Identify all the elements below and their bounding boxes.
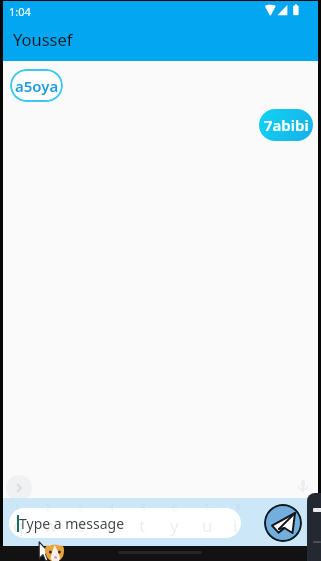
staticText: 1 bbox=[15, 501, 21, 513]
staticText: u bbox=[202, 514, 213, 537]
button[interactable]: More suggestions bbox=[6, 475, 32, 501]
button[interactable]: a5oya bbox=[10, 69, 63, 102]
staticText: w bbox=[44, 514, 58, 537]
staticText: 4 bbox=[109, 501, 115, 513]
button[interactable]: Send bbox=[264, 504, 302, 542]
staticText: i bbox=[233, 514, 238, 537]
staticText: r bbox=[107, 514, 115, 537]
staticText: 1:04 bbox=[9, 4, 31, 19]
staticText: 8 bbox=[235, 501, 241, 513]
staticText: t bbox=[139, 514, 146, 537]
button[interactable]: 7abibi bbox=[259, 109, 313, 141]
staticText: y bbox=[170, 514, 179, 537]
staticText: 7 bbox=[204, 501, 210, 513]
staticText: Youssef bbox=[13, 28, 73, 50]
staticText: a5oya bbox=[15, 76, 59, 96]
button[interactable]: Voice input bbox=[294, 477, 312, 495]
staticText: 5 bbox=[141, 501, 147, 513]
staticText: 7abibi bbox=[264, 115, 309, 135]
staticText: Type a message bbox=[19, 514, 125, 533]
staticText: 2 bbox=[46, 501, 52, 513]
staticText: 3 bbox=[78, 501, 84, 513]
staticText: 6 bbox=[172, 501, 178, 513]
staticText: q bbox=[13, 514, 24, 537]
staticText: e bbox=[76, 514, 86, 537]
button[interactable]: Type a message bbox=[9, 508, 241, 538]
